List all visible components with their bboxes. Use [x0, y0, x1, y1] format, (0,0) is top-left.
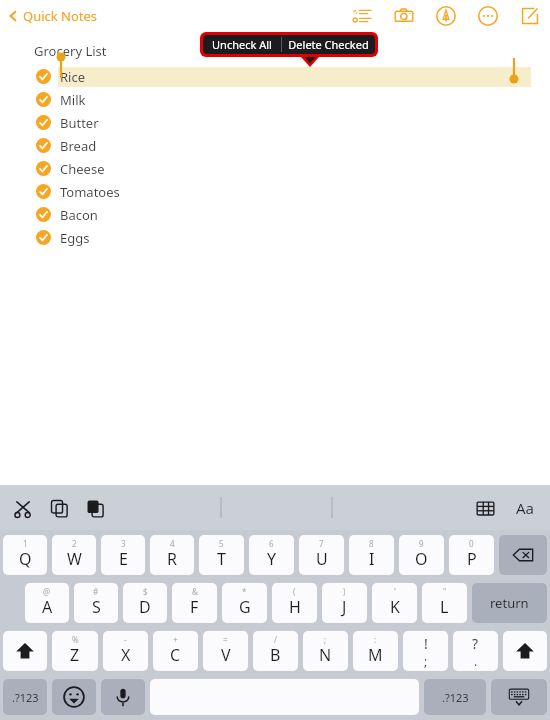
- button[interactable]: 4: [150, 535, 194, 575]
- staticText: ;: [424, 653, 428, 669]
- button[interactable]: !: [403, 631, 448, 671]
- button[interactable]: @: [25, 583, 69, 623]
- staticText: :: [374, 634, 377, 645]
- staticText: 7: [319, 538, 324, 549]
- staticText: 5: [219, 538, 224, 549]
- button[interactable]: /: [253, 631, 298, 671]
- staticText: G: [239, 596, 251, 618]
- button[interactable]: %: [52, 631, 98, 671]
- staticText: D: [139, 596, 151, 618]
- button[interactable]: Shift: [503, 631, 547, 671]
- button[interactable]: Quick Notes: [6, 7, 98, 25]
- button[interactable]: +: [153, 631, 198, 671]
- staticText: R: [167, 548, 177, 570]
- staticText: %: [72, 634, 79, 645]
- staticText: =: [223, 634, 228, 645]
- button[interactable]: 0: [449, 535, 494, 575]
- button[interactable]: =: [203, 631, 248, 671]
- button[interactable]: (: [272, 583, 317, 623]
- staticText: Bread: [60, 137, 97, 155]
- staticText: X: [121, 644, 131, 666]
- staticText: +: [173, 634, 178, 645]
- button[interactable]: ": [422, 583, 467, 623]
- button[interactable]: Table: [472, 495, 498, 521]
- button[interactable]: 3: [101, 535, 145, 575]
- staticText: O: [415, 548, 428, 570]
- staticText: W: [67, 548, 82, 570]
- staticText: @: [43, 586, 51, 597]
- button[interactable]: Paste: [82, 495, 108, 521]
- button[interactable]: ?: [453, 631, 498, 671]
- button[interactable]: Rice: [0, 65, 550, 88]
- button[interactable]: Dictate: [101, 679, 145, 715]
- button[interactable]: 2: [52, 535, 96, 575]
- staticText: Tomatoes: [60, 183, 120, 201]
- button[interactable]: Shift: [3, 631, 47, 671]
- button[interactable]: Cheese: [0, 157, 550, 180]
- button[interactable]: 8: [349, 535, 394, 575]
- button[interactable]: Aa: [512, 495, 538, 521]
- button[interactable]: Butter: [0, 111, 550, 134]
- button[interactable]: 9: [399, 535, 444, 575]
- staticText: Q: [19, 548, 32, 570]
- button[interactable]: $: [123, 583, 167, 623]
- staticText: 6: [269, 538, 274, 549]
- button[interactable]: Bacon: [0, 203, 550, 226]
- staticText: Butter: [60, 114, 99, 132]
- staticText: C: [170, 644, 181, 666]
- staticText: K: [390, 596, 400, 618]
- button[interactable]: Backspace: [499, 535, 547, 575]
- staticText: ;: [324, 634, 327, 645]
- staticText: A: [42, 596, 53, 618]
- button[interactable]: Tomatoes: [0, 180, 550, 203]
- staticText: .: [474, 653, 478, 669]
- button[interactable]: :: [353, 631, 398, 671]
- button[interactable]: Hide keyboard: [491, 679, 547, 715]
- button[interactable]: -: [103, 631, 148, 671]
- button[interactable]: *: [222, 583, 267, 623]
- button[interactable]: Emoji: [52, 679, 96, 715]
- button[interactable]: Uncheck All: [203, 35, 281, 54]
- button[interactable]: Milk: [0, 88, 550, 111]
- button[interactable]: Delete Checked: [282, 35, 375, 54]
- button[interactable]: 6: [249, 535, 294, 575]
- button[interactable]: #: [74, 583, 118, 623]
- button[interactable]: Bread: [0, 134, 550, 157]
- staticText: Eggs: [60, 229, 90, 247]
- staticText: B: [270, 644, 281, 666]
- button[interactable]: Cut: [10, 495, 36, 521]
- button[interactable]: Markup: [434, 4, 458, 28]
- button[interactable]: ': [372, 583, 417, 623]
- staticText: V: [221, 644, 231, 666]
- button[interactable]: More: [476, 4, 500, 28]
- button[interactable]: Camera: [392, 4, 416, 28]
- button[interactable]: .?123: [424, 679, 486, 715]
- button[interactable]: 7: [299, 535, 344, 575]
- button[interactable]: Checklist: [350, 4, 374, 28]
- staticText: F: [190, 596, 199, 618]
- staticText: 2: [72, 538, 77, 549]
- button[interactable]: Copy: [46, 495, 72, 521]
- staticText: T: [217, 548, 226, 570]
- staticText: L: [440, 596, 449, 618]
- staticText: Cheese: [60, 160, 105, 178]
- button[interactable]: return: [472, 583, 547, 623]
- button[interactable]: Compose: [518, 4, 542, 28]
- staticText: Delete Checked: [288, 37, 369, 52]
- staticText: 1: [23, 538, 28, 549]
- button[interactable]: &: [172, 583, 217, 623]
- button[interactable]: ): [322, 583, 367, 623]
- staticText: Rice: [60, 68, 86, 86]
- button[interactable]: ;: [303, 631, 348, 671]
- staticText: .?123: [442, 690, 469, 705]
- button[interactable]: 5: [199, 535, 244, 575]
- button[interactable]: Eggs: [0, 226, 550, 249]
- staticText: Quick Notes: [23, 7, 98, 25]
- staticText: N: [319, 644, 332, 666]
- button[interactable]: .?123: [3, 679, 47, 715]
- staticText: &: [192, 586, 198, 597]
- staticText: Y: [267, 548, 277, 570]
- button[interactable]: 1: [3, 535, 47, 575]
- staticText: #: [93, 586, 99, 597]
